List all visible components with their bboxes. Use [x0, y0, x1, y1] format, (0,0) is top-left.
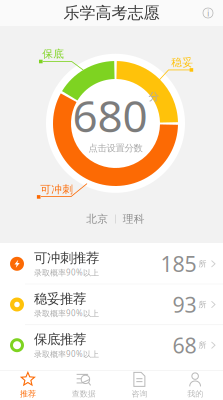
staticText: 185	[160, 250, 196, 278]
button[interactable]: 理科	[123, 212, 145, 225]
button[interactable]: 查数据	[56, 368, 112, 400]
staticText: 保底推荐	[34, 331, 86, 348]
staticText: 咨询	[131, 389, 147, 399]
staticText: 680	[72, 86, 147, 144]
button[interactable]: 保底推荐	[0, 325, 223, 365]
staticText: 分	[148, 90, 159, 103]
staticText: 所	[198, 300, 206, 309]
staticText: 可冲刺推荐	[34, 250, 99, 266]
button[interactable]: 推荐	[0, 368, 56, 400]
staticText: 推荐	[20, 389, 36, 399]
staticText: 93	[172, 290, 196, 319]
staticText: 所	[198, 259, 206, 269]
staticText: 稳妥	[171, 56, 193, 69]
staticText: 录取概率90%以上	[34, 308, 99, 318]
staticText: 查数据	[72, 389, 96, 399]
button[interactable]: 稳妥推荐	[0, 284, 223, 324]
staticText: 保底	[42, 47, 64, 60]
button[interactable]: 可冲刺推荐	[0, 244, 223, 284]
staticText: 乐学高考志愿	[63, 3, 159, 23]
staticText: i	[207, 7, 209, 19]
button[interactable]: 我的	[167, 368, 223, 400]
staticText: 录取概率90%以上	[34, 349, 99, 359]
staticText: 北京	[86, 212, 108, 225]
staticText: 稳妥推荐	[34, 290, 86, 307]
button[interactable]: 咨询	[111, 368, 167, 400]
staticText: 所	[198, 340, 206, 350]
staticText: 68	[172, 331, 196, 359]
staticText: 点击设置分数	[88, 142, 142, 154]
button[interactable]: Info	[199, 4, 217, 22]
staticText: 我的	[187, 389, 203, 399]
staticText: 录取概率90%以上	[34, 267, 99, 278]
staticText: 可冲刺	[40, 183, 73, 196]
button[interactable]: 北京	[86, 212, 108, 225]
staticText: 理科	[123, 212, 145, 225]
